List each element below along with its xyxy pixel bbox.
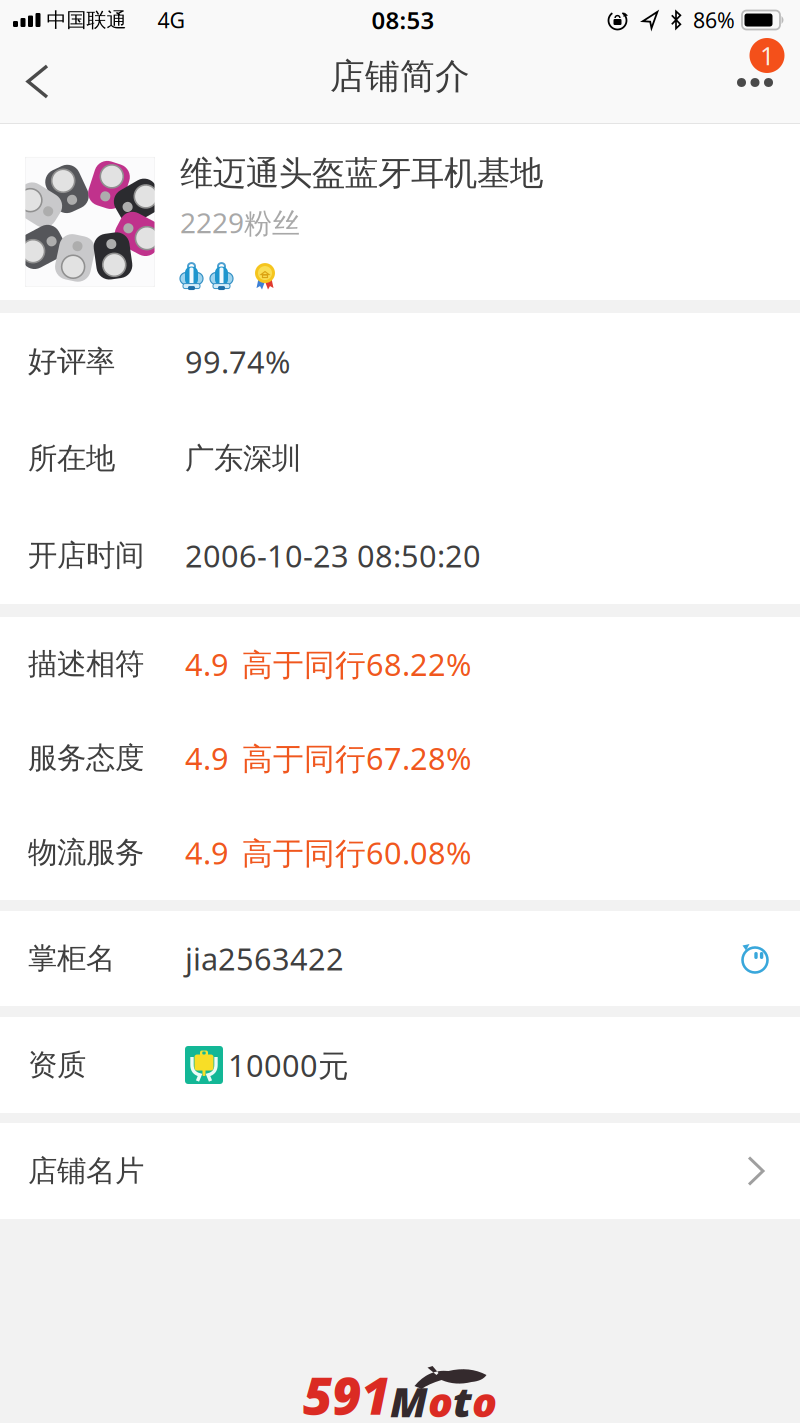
staticText: 好评率 — [28, 343, 115, 379]
staticText: 高于同行68.22% — [242, 644, 471, 684]
staticText: 所在地 — [28, 440, 115, 476]
staticText: 开店时间 — [28, 537, 144, 573]
button[interactable]: 更多 — [704, 40, 800, 123]
staticText: 高于同行67.28% — [242, 738, 471, 778]
staticText: 08:53 — [371, 4, 434, 36]
staticText: o — [472, 1374, 497, 1423]
staticText: 服务态度 — [28, 740, 144, 776]
staticText: t — [453, 1374, 472, 1423]
staticText: 4.9 — [185, 738, 229, 778]
staticText: 4.9 — [185, 644, 229, 684]
button[interactable]: 店铺名片 — [0, 1123, 800, 1219]
staticText: 掌柜名 — [28, 940, 115, 976]
staticText: 高于同行60.08% — [242, 832, 471, 873]
staticText: 中国联通 — [46, 8, 126, 32]
staticText: 资质 — [28, 1047, 86, 1083]
staticText: 86% — [693, 6, 735, 34]
staticText: o — [428, 1374, 453, 1423]
staticText: M — [390, 1374, 428, 1423]
staticText: 描述相符 — [28, 646, 144, 682]
staticText: 591 — [303, 1361, 390, 1423]
staticText: 1 — [760, 39, 774, 72]
staticText: 4G — [157, 6, 185, 34]
button[interactable]: 联系掌柜 — [720, 911, 790, 1006]
staticText: 10000元 — [228, 1045, 349, 1085]
staticText: 物流服务 — [28, 834, 144, 870]
staticText: 广东深圳 — [185, 440, 301, 476]
staticText: 4.9 — [185, 832, 229, 873]
staticText: 2006-10-23 08:50:20 — [185, 535, 481, 576]
staticText: 维迈通头盔蓝牙耳机基地 — [180, 153, 543, 194]
staticText: jia2563422 — [185, 938, 344, 979]
staticText: 99.74% — [185, 341, 290, 382]
staticText: 店铺名片 — [28, 1153, 144, 1189]
button[interactable]: 返回 — [0, 40, 71, 123]
staticText: 2229粉丝 — [180, 204, 300, 241]
staticText: 店铺简介 — [330, 55, 470, 98]
